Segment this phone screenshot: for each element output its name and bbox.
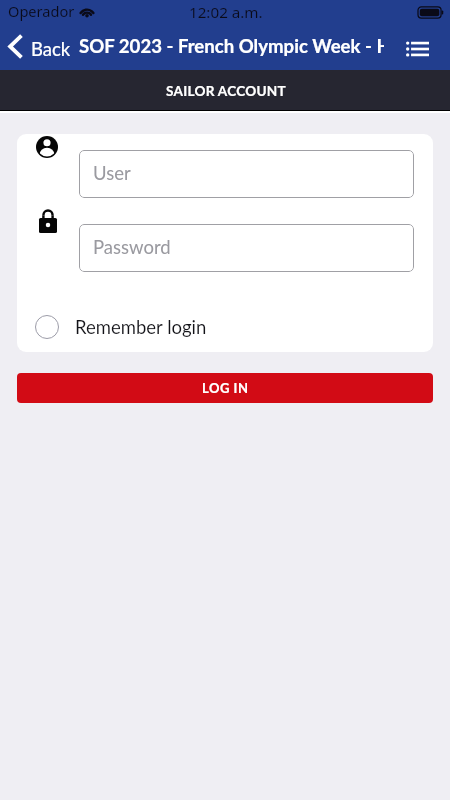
button[interactable]: Menu bbox=[406, 28, 450, 70]
button[interactable]: LOG IN bbox=[17, 373, 433, 403]
button[interactable]: Remember login bbox=[17, 307, 433, 347]
staticText: Back bbox=[31, 38, 71, 60]
button[interactable]: Password bbox=[79, 224, 414, 272]
staticText: SAILOR ACCOUNT bbox=[166, 83, 286, 99]
staticText: 12:02 a.m. bbox=[189, 2, 263, 23]
staticText: Password bbox=[93, 236, 171, 258]
staticText: SOF 2023 - French Olympic Week - Hyères bbox=[79, 35, 384, 57]
staticText: Operador bbox=[8, 1, 75, 21]
staticText: LOG IN bbox=[202, 380, 249, 396]
staticText: User bbox=[93, 162, 131, 184]
button[interactable]: User bbox=[79, 150, 414, 198]
button[interactable]: Back bbox=[8, 28, 71, 70]
staticText: Remember login bbox=[75, 316, 207, 338]
